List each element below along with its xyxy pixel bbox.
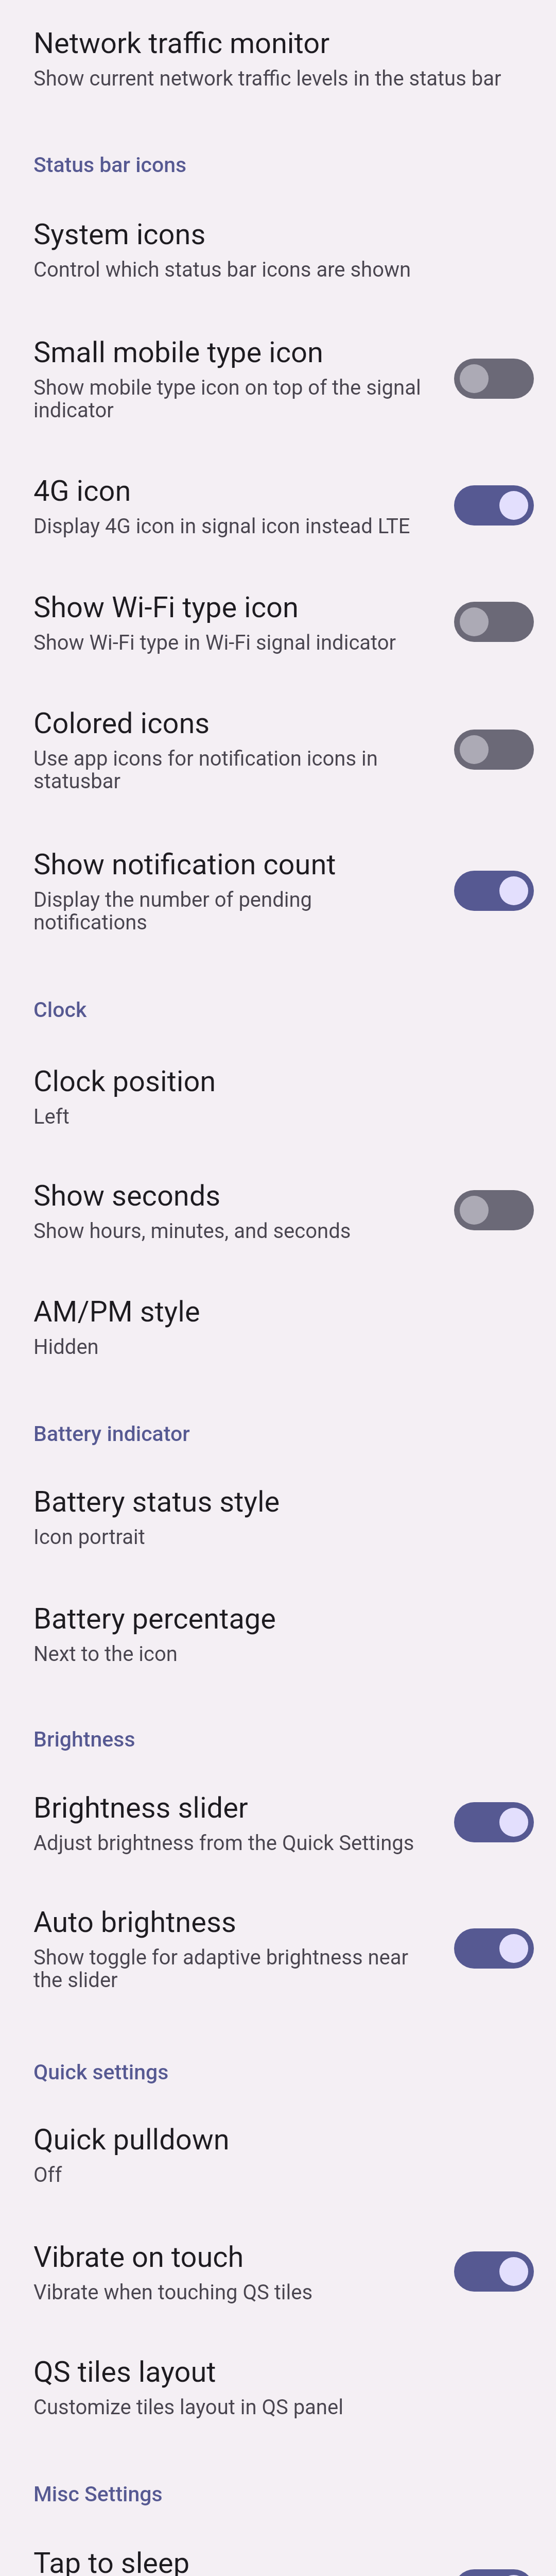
staticText: Show seconds <box>33 1179 221 1213</box>
staticText: Show current network traffic levels in t… <box>33 66 501 91</box>
button[interactable]: Show notification count <box>0 832 556 950</box>
button[interactable]: Auto brightness <box>0 1890 556 2008</box>
staticText: Show hours, minutes, and seconds <box>33 1219 351 1243</box>
button[interactable]: Switch, on <box>454 1928 534 1969</box>
staticText: Icon portrait <box>33 1525 145 1549</box>
staticText: Show notification count <box>33 848 336 882</box>
staticText: Quick settings <box>33 2060 169 2084</box>
staticText: Colored icons <box>33 706 210 740</box>
button[interactable]: Tap to sleep <box>0 2531 556 2576</box>
staticText: Use app icons for notification icons in … <box>33 747 378 793</box>
staticText: Show Wi-Fi type icon <box>33 590 299 624</box>
button[interactable]: Network traffic monitor <box>0 11 556 106</box>
staticText: Status bar icons <box>33 152 187 177</box>
staticText: Battery indicator <box>33 1421 190 1446</box>
staticText: Display 4G icon in signal icon instead L… <box>33 514 410 538</box>
staticText: Battery status style <box>33 1485 280 1519</box>
button[interactable]: Clock position <box>0 1049 556 1144</box>
staticText: AM/PM style <box>33 1295 200 1329</box>
staticText: Brightness slider <box>33 1791 248 1825</box>
button[interactable]: Battery percentage <box>0 1586 556 1682</box>
staticText: Clock position <box>33 1064 216 1098</box>
button[interactable]: System icons <box>0 202 556 297</box>
button[interactable]: Quick pulldown <box>0 2107 556 2202</box>
staticText: Control which status bar icons are shown <box>33 258 411 282</box>
staticText: Clock <box>33 997 87 1022</box>
staticText: Misc Settings <box>33 2482 163 2506</box>
staticText: Next to the icon <box>33 1642 178 1666</box>
staticText: Auto brightness <box>33 1905 236 1939</box>
staticText: Show mobile type icon on top of the sign… <box>33 376 421 422</box>
staticText: Tap to sleep <box>33 2546 190 2576</box>
staticText: Vibrate on touch <box>33 2240 244 2274</box>
staticText: Adjust brightness from the Quick Setting… <box>33 1831 414 1855</box>
staticText: 4G icon <box>33 474 131 508</box>
button[interactable]: Switch, off <box>454 359 534 399</box>
button[interactable]: Switch, off <box>454 1190 534 1230</box>
staticText: Show toggle for adaptive brightness near… <box>33 1945 409 1992</box>
staticText: Brightness <box>33 1727 135 1752</box>
staticText: Show Wi-Fi type in Wi-Fi signal indicato… <box>33 631 396 655</box>
staticText: QS tiles layout <box>33 2355 216 2389</box>
staticText: Quick pulldown <box>33 2123 230 2157</box>
button[interactable]: Brightness slider <box>0 1775 556 1871</box>
button[interactable]: Show seconds <box>0 1163 556 1259</box>
button[interactable]: Battery status style <box>0 1469 556 1565</box>
staticText: Left <box>33 1105 69 1129</box>
staticText: System icons <box>33 217 206 251</box>
staticText: Battery percentage <box>33 1602 276 1636</box>
button[interactable]: Switch, on <box>454 2569 534 2576</box>
staticText: Off <box>33 2163 62 2187</box>
staticText: Network traffic monitor <box>33 26 330 60</box>
staticText: Vibrate when touching QS tiles <box>33 2280 313 2304</box>
button[interactable]: Vibrate on touch <box>0 2225 556 2320</box>
staticText: Small mobile type icon <box>33 335 323 369</box>
button[interactable]: Switch, on <box>454 1802 534 1842</box>
button[interactable]: AM/PM style <box>0 1279 556 1375</box>
button[interactable]: Show Wi-Fi type icon <box>0 575 556 670</box>
button[interactable]: 4G icon <box>0 459 556 554</box>
button[interactable]: Switch, on <box>454 871 534 911</box>
button[interactable]: Colored icons <box>0 691 556 809</box>
staticText: Hidden <box>33 1335 99 1359</box>
button[interactable]: QS tiles layout <box>0 2340 556 2435</box>
button[interactable]: Small mobile type icon <box>0 320 556 438</box>
staticText: Display the number of pending notificati… <box>33 888 312 935</box>
button[interactable]: Switch, off <box>454 602 534 642</box>
button[interactable]: Switch, on <box>454 2251 534 2292</box>
staticText: Customize tiles layout in QS panel <box>33 2395 343 2419</box>
button[interactable]: Switch, on <box>454 485 534 526</box>
button[interactable]: Switch, off <box>454 730 534 770</box>
